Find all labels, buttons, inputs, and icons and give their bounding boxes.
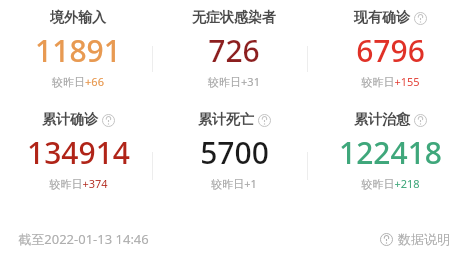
button[interactable]: 现有确诊 (312, 9, 468, 89)
button[interactable]: 累计死亡 (156, 111, 312, 191)
button[interactable]: 数据说明 (380, 231, 450, 247)
staticText: 较昨日+218 (361, 176, 420, 191)
other: 说明 (414, 114, 427, 127)
staticText: 累计确诊 (42, 111, 98, 129)
staticText: 累计死亡 (198, 111, 254, 129)
staticText: 截至2022-01-13 14:46 (18, 230, 149, 248)
staticText: 较昨日+155 (361, 74, 420, 89)
button[interactable]: 累计确诊 (0, 111, 156, 191)
staticText: 5700 (200, 132, 269, 173)
button[interactable]: 境外输入 (0, 9, 156, 89)
staticText: 较昨日+1 (211, 176, 257, 191)
staticText: 134914 (27, 132, 130, 173)
other: 说明 (414, 12, 427, 25)
staticText: 现有确诊 (354, 9, 410, 27)
staticText: 726 (208, 30, 260, 71)
button[interactable]: 累计治愈 (312, 111, 468, 191)
staticText: 境外输入 (50, 9, 106, 27)
other: 说明 (102, 114, 115, 127)
staticText: 122418 (339, 132, 442, 173)
other: 说明 (258, 114, 271, 127)
staticText: 无症状感染者 (192, 9, 276, 27)
button[interactable]: 无症状感染者 (156, 9, 312, 89)
staticText: 累计治愈 (354, 111, 410, 129)
staticText: 11891 (35, 30, 121, 71)
staticText: 较昨日+31 (208, 74, 260, 89)
staticText: 较昨日+374 (49, 176, 108, 191)
staticText: 较昨日+66 (52, 74, 104, 89)
staticText: 6796 (356, 30, 425, 71)
staticText: 数据说明 (398, 231, 450, 247)
